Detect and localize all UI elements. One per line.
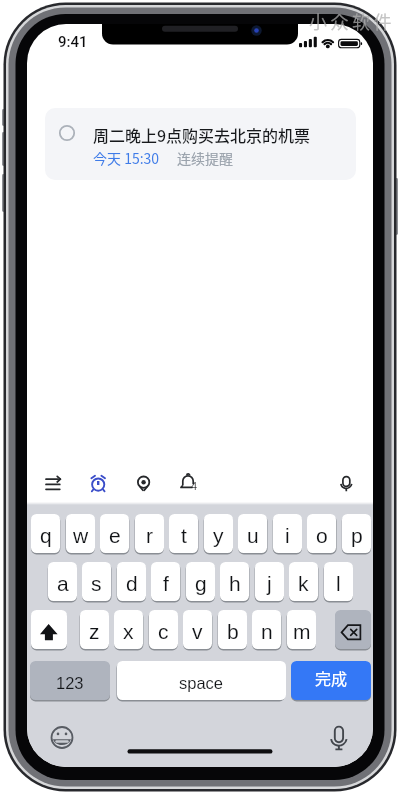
staticText: p [351, 524, 363, 547]
button[interactable]: p [342, 514, 371, 553]
staticText: space [179, 674, 224, 692]
button[interactable] [335, 610, 371, 649]
staticText: 123 [56, 674, 84, 692]
button[interactable]: g [186, 562, 215, 601]
staticText: 完成 [315, 666, 348, 689]
staticText: u [247, 524, 259, 547]
staticText: d [126, 572, 138, 595]
button[interactable] [321, 719, 357, 755]
button[interactable]: d [117, 562, 146, 601]
staticText: a [57, 572, 69, 595]
staticText: y [213, 524, 224, 547]
button[interactable]: r [135, 514, 164, 553]
button[interactable]: m [287, 610, 316, 649]
button[interactable]: h [220, 562, 249, 601]
button[interactable]: s [82, 562, 111, 601]
button[interactable]: space [117, 661, 286, 700]
button[interactable]: i [273, 514, 302, 553]
button[interactable]: w [66, 514, 95, 553]
staticText: x [123, 620, 134, 643]
button[interactable]: b [218, 610, 247, 649]
button[interactable]: 周二晚上9点购买去北京的机票 [45, 108, 356, 180]
button[interactable]: x [114, 610, 143, 649]
button[interactable]: q [31, 514, 60, 553]
staticText: 4 [191, 480, 198, 492]
button[interactable]: y [204, 514, 233, 553]
staticText: f [163, 572, 169, 595]
staticText: 小众软件 [309, 8, 395, 34]
staticText: j [267, 572, 272, 595]
button[interactable] [168, 464, 208, 504]
staticText: w [73, 524, 89, 547]
staticText: n [261, 620, 273, 643]
button[interactable]: z [80, 610, 109, 649]
staticText: k [298, 572, 309, 595]
button[interactable]: c [149, 610, 178, 649]
button[interactable]: j [255, 562, 284, 601]
staticText: e [109, 524, 121, 547]
button[interactable]: e [100, 514, 129, 553]
staticText: b [227, 620, 239, 643]
staticText: c [158, 620, 169, 643]
button[interactable]: n [252, 610, 281, 649]
button[interactable]: a [48, 562, 77, 601]
button[interactable]: o [307, 514, 336, 553]
button[interactable]: k [289, 562, 318, 601]
button[interactable]: u [238, 514, 267, 553]
staticText: t [181, 524, 187, 547]
staticText: m [293, 620, 311, 643]
staticText: l [336, 572, 341, 595]
button[interactable] [31, 610, 67, 649]
staticText: h [229, 572, 241, 595]
staticText: s [91, 572, 102, 595]
button[interactable] [326, 464, 366, 504]
button[interactable] [33, 464, 73, 504]
staticText: 周二晚上9点购买去北京的机票 [93, 123, 311, 146]
staticText: v [192, 620, 203, 643]
staticText: o [316, 524, 328, 547]
button[interactable]: t [169, 514, 198, 553]
button[interactable]: f [151, 562, 180, 601]
staticText: q [40, 524, 52, 547]
button[interactable] [78, 464, 118, 504]
staticText: g [195, 572, 207, 595]
staticText: 9:41 [58, 33, 88, 51]
staticText: 今天 15:30 [93, 148, 160, 168]
button[interactable]: l [324, 562, 353, 601]
button[interactable]: 123 [30, 661, 110, 700]
button[interactable]: v [183, 610, 212, 649]
staticText: i [285, 524, 290, 547]
button[interactable] [124, 464, 164, 504]
button[interactable] [44, 719, 80, 755]
button[interactable]: 完成 [291, 661, 371, 700]
staticText: 连续提醒 [177, 148, 233, 168]
staticText: z [89, 620, 100, 643]
staticText: r [146, 524, 153, 547]
